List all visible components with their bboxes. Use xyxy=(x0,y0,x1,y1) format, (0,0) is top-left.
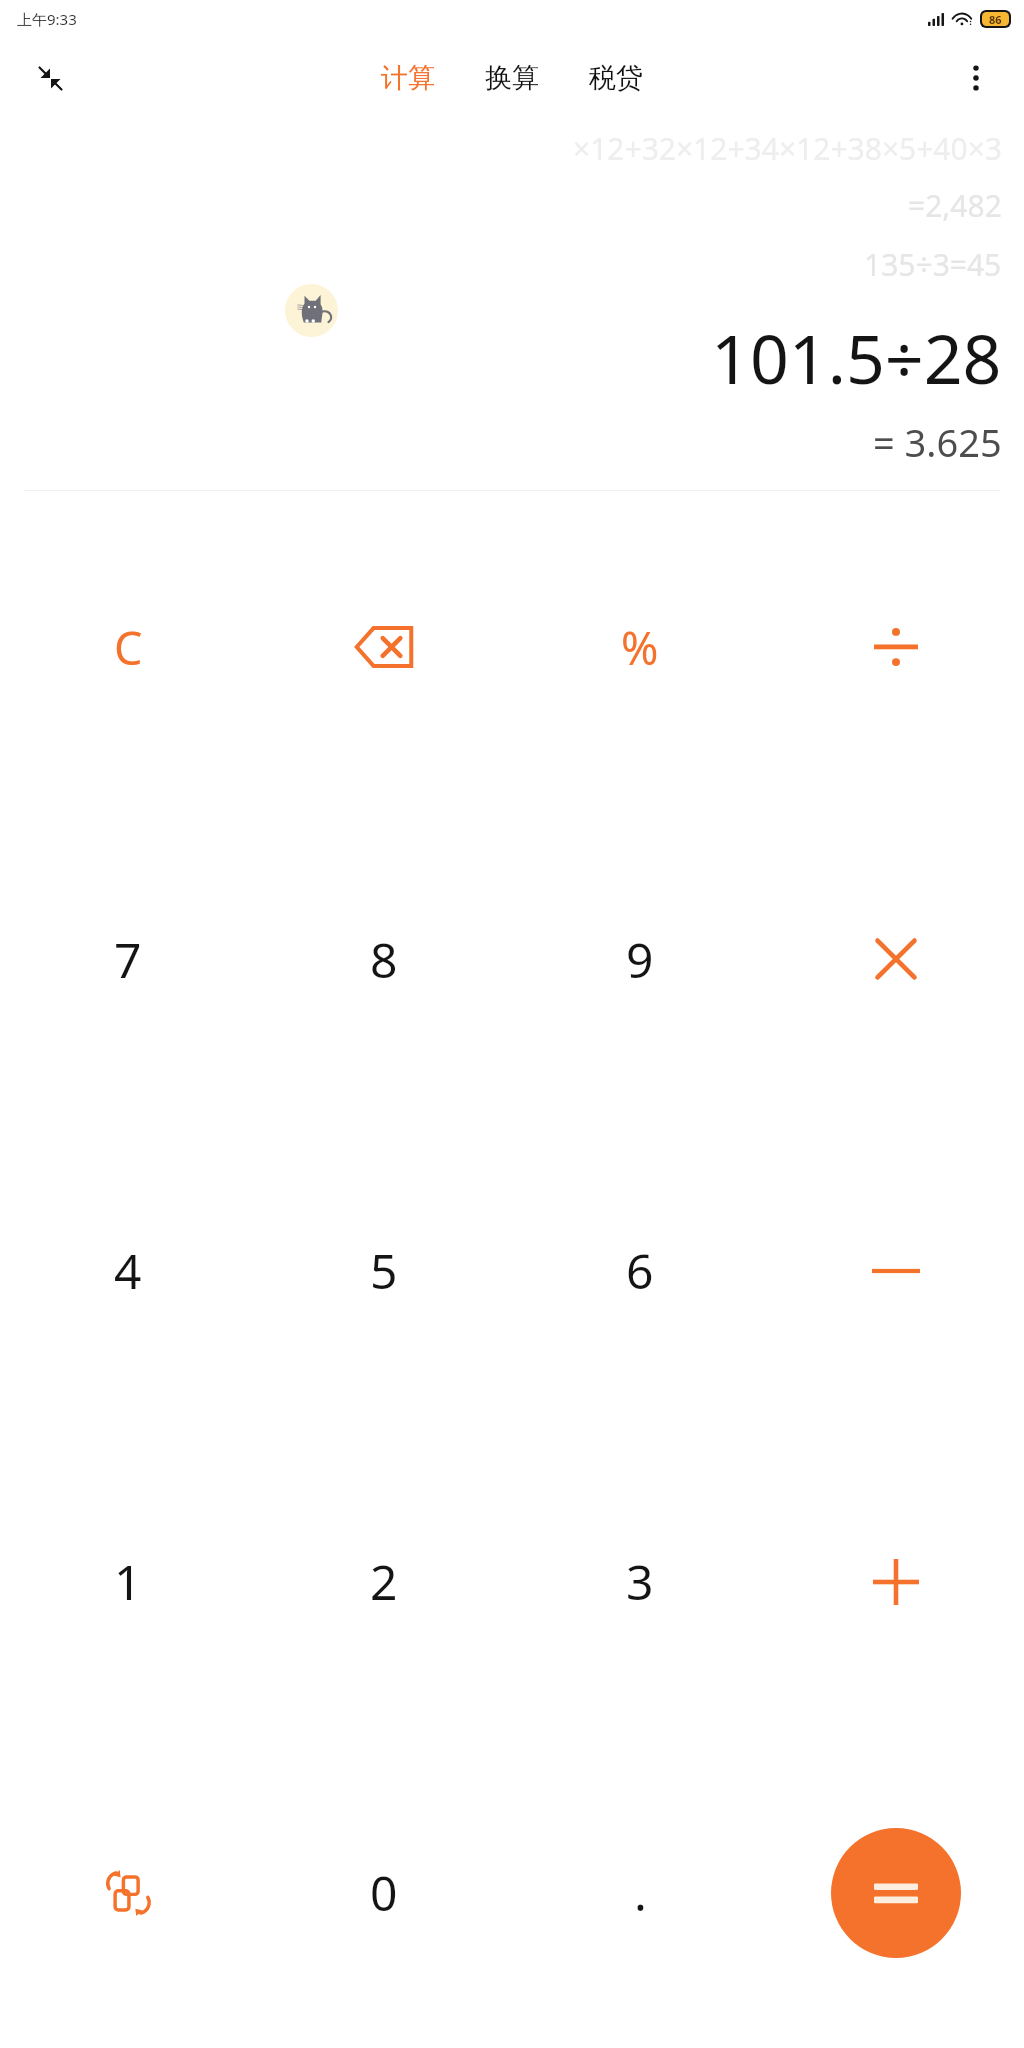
button[interactable]: Equals xyxy=(831,1828,961,1958)
button[interactable]: Clear xyxy=(0,491,256,803)
button[interactable]: 4 xyxy=(0,1115,256,1426)
staticText: 上午9:33 xyxy=(17,9,77,29)
button[interactable]: 6 xyxy=(512,1115,768,1426)
staticText: 1 xyxy=(114,1549,142,1614)
button[interactable]: 5 xyxy=(256,1115,512,1426)
button[interactable]: 1 xyxy=(0,1426,256,1737)
button[interactable]: Percent xyxy=(512,491,768,803)
button[interactable]: 税贷 xyxy=(581,51,651,105)
staticText: ×12+32×12+34×12+38×5+40×3 xyxy=(573,128,1002,169)
staticText: C xyxy=(114,617,143,678)
staticText: 7 xyxy=(114,927,142,992)
staticText: 6 xyxy=(626,1238,654,1303)
button[interactable]: Backspace xyxy=(256,491,512,803)
button[interactable]: More options xyxy=(948,50,1004,106)
staticText: 0 xyxy=(370,1860,398,1925)
staticText: 2 xyxy=(370,1549,398,1614)
button[interactable]: Plus xyxy=(768,1426,1024,1737)
button[interactable]: 换算 xyxy=(477,51,547,105)
button[interactable]: 计算 xyxy=(373,51,443,105)
button[interactable]: . xyxy=(512,1737,768,2048)
staticText: 9 xyxy=(626,927,654,992)
staticText: 86 xyxy=(989,12,1002,26)
staticText: % xyxy=(621,617,659,678)
button[interactable]: Minus xyxy=(768,1115,1024,1426)
staticText: 101.5÷28 xyxy=(711,311,1002,404)
staticText: 135÷3=45 xyxy=(864,244,1002,285)
button[interactable]: 3 xyxy=(512,1426,768,1737)
staticText: 4 xyxy=(114,1238,142,1303)
button[interactable]: Unit convert xyxy=(0,1737,256,2048)
button[interactable]: Collapse xyxy=(22,50,78,106)
staticText: =2,482 xyxy=(908,185,1002,226)
button[interactable]: Multiply xyxy=(768,803,1024,1115)
staticText: = 3.625 xyxy=(873,416,1002,468)
button[interactable]: 0 xyxy=(256,1737,512,2048)
staticText: 5 xyxy=(370,1238,398,1303)
staticText: 计算 xyxy=(381,61,435,95)
staticText: 8 xyxy=(370,927,398,992)
staticText: . xyxy=(634,1860,647,1925)
button[interactable]: 7 xyxy=(0,803,256,1115)
button[interactable]: 8 xyxy=(256,803,512,1115)
staticText: 换算 xyxy=(485,61,539,95)
button[interactable]: Divide xyxy=(768,491,1024,803)
button[interactable]: 9 xyxy=(512,803,768,1115)
staticText: 税贷 xyxy=(589,61,643,95)
staticText: 3 xyxy=(626,1549,654,1614)
button[interactable]: 2 xyxy=(256,1426,512,1737)
